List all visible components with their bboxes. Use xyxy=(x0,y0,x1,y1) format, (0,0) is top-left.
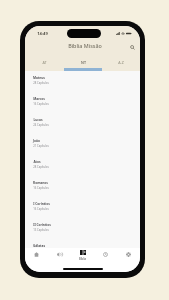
staticText: João xyxy=(33,139,40,143)
button[interactable]: João xyxy=(25,139,140,160)
staticText: 28 Capítulos xyxy=(33,165,49,169)
button[interactable]: Marcos xyxy=(25,97,140,118)
staticText: 13 Capítulos xyxy=(33,228,49,232)
button[interactable]: AT xyxy=(25,26,64,71)
staticText: I Coríntios xyxy=(33,202,50,206)
button[interactable]: Lucas xyxy=(25,118,140,139)
staticText: 16 Capítulos xyxy=(33,207,49,211)
button[interactable]: A-Z xyxy=(102,26,140,71)
staticText: NT xyxy=(81,60,86,65)
staticText: Bíblia xyxy=(79,257,86,261)
staticText: AT xyxy=(42,60,47,65)
button[interactable]: Romanos xyxy=(25,181,140,202)
staticText: 16 Capítulos xyxy=(33,186,49,190)
staticText: 24 Capítulos xyxy=(33,123,49,127)
staticText: Lucas xyxy=(33,118,43,122)
staticText: 28 Capítulos xyxy=(33,81,49,85)
button[interactable]: Planos xyxy=(94,248,117,266)
staticText: 16 Capítulos xyxy=(33,102,49,106)
button[interactable]: Ajustes xyxy=(117,248,140,266)
button[interactable]: Search xyxy=(127,42,138,53)
staticText: Marcos xyxy=(33,97,45,101)
button[interactable]: I Coríntios xyxy=(25,202,140,223)
button[interactable]: Bíblia xyxy=(71,248,94,266)
staticText: Bíblia Missão xyxy=(68,42,102,49)
button[interactable]: II Coríntios xyxy=(25,223,140,244)
staticText: II Coríntios xyxy=(33,223,51,227)
staticText: Gálatas xyxy=(33,244,45,248)
button[interactable]: NT xyxy=(64,26,102,71)
staticText: 6 Capítulos xyxy=(33,249,48,253)
staticText: Mateus xyxy=(33,76,45,80)
staticText: Romanos xyxy=(33,181,48,185)
button[interactable]: Início xyxy=(25,248,48,266)
button[interactable]: Áudio xyxy=(48,248,71,266)
staticText: Atos xyxy=(33,160,41,164)
staticText: A-Z xyxy=(118,60,124,65)
staticText: 14:49 xyxy=(37,31,48,37)
button[interactable]: Atos xyxy=(25,160,140,181)
button[interactable]: Mateus xyxy=(25,76,140,97)
staticText: 21 Capítulos xyxy=(33,144,49,148)
button[interactable]: Gálatas xyxy=(25,244,140,265)
